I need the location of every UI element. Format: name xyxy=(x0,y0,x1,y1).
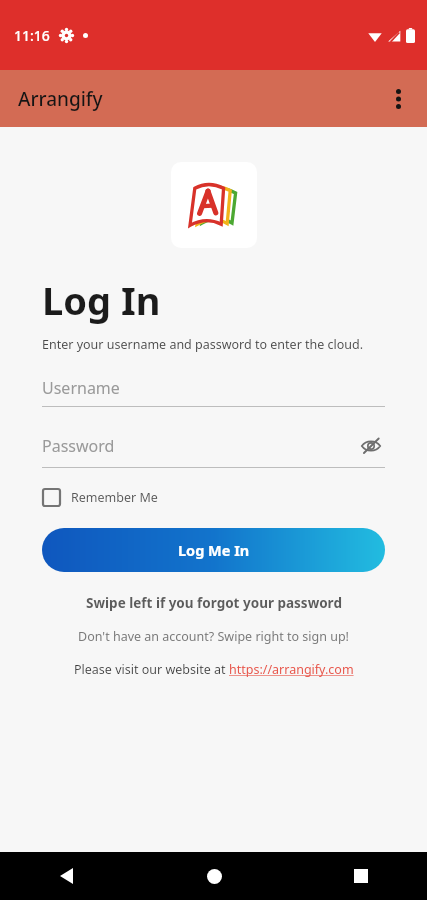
button[interactable]: Password xyxy=(42,432,385,468)
button[interactable]: More options xyxy=(377,78,419,120)
button[interactable]: Don't have an account? Swipe right to si… xyxy=(0,628,427,645)
button[interactable]: Remember Me xyxy=(42,488,158,507)
button[interactable]: Username xyxy=(42,377,385,407)
button[interactable]: Back xyxy=(46,856,86,896)
button[interactable]: Show password xyxy=(357,432,385,460)
staticText: Don't have an account? Swipe right to si… xyxy=(78,628,349,645)
button[interactable]: https://arrangify.com xyxy=(229,661,354,678)
button[interactable]: Home xyxy=(194,856,234,896)
staticText: Log Me In xyxy=(178,540,250,560)
staticText: Enter your username and password to ente… xyxy=(42,336,364,353)
staticText: Username xyxy=(42,377,385,399)
staticText: Swipe left if you forgot your password xyxy=(86,594,342,612)
button[interactable]: Recent apps xyxy=(341,856,381,896)
button[interactable]: Swipe left if you forgot your password xyxy=(0,594,427,612)
button[interactable] xyxy=(171,162,257,248)
staticText: Password xyxy=(42,435,357,457)
staticText: Please visit our website at xyxy=(74,661,229,678)
staticText: Remember Me xyxy=(71,489,158,506)
staticText: Arrangify xyxy=(18,86,103,112)
staticText: Log In xyxy=(42,274,161,326)
button[interactable]: Log Me In xyxy=(42,528,385,572)
staticText: 11:16 xyxy=(14,26,50,45)
staticText: https://arrangify.com xyxy=(229,661,354,678)
